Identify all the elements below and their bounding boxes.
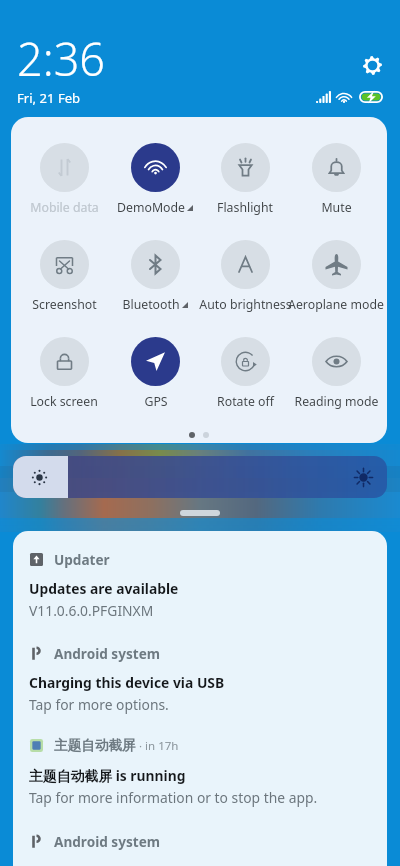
- staticText: Lock screen: [30, 393, 98, 410]
- staticText: Bluetooth: [122, 296, 180, 313]
- staticText: Flashlight: [217, 199, 273, 216]
- staticText: Charging this device via USB: [29, 673, 225, 692]
- button[interactable]: Android system: [13, 813, 387, 866]
- staticText: 主题自动截屏 is running: [29, 766, 186, 785]
- button[interactable]: Updater: [13, 531, 387, 624]
- button[interactable]: Bluetooth: [95, 240, 215, 318]
- button[interactable]: Mute: [276, 143, 387, 221]
- staticText: Tap for more options.: [29, 695, 169, 714]
- staticText: Updates are available: [29, 579, 179, 598]
- staticText: Tap for more information or to stop the …: [29, 788, 318, 807]
- button[interactable]: Screenshot: [11, 240, 124, 318]
- button[interactable]: Rotate off: [185, 337, 305, 415]
- staticText: · in 17h: [136, 738, 179, 754]
- staticText: Screenshot: [32, 296, 97, 313]
- staticText: Reading mode: [294, 393, 379, 410]
- button[interactable]: Mobile data: [11, 143, 124, 221]
- button[interactable]: Settings: [354, 47, 390, 83]
- staticText: Auto brightness: [199, 296, 292, 313]
- staticText: GPS: [144, 393, 168, 410]
- button[interactable]: Auto brightness: [185, 240, 305, 318]
- staticText: Aeroplane mode: [288, 296, 384, 313]
- button[interactable]: Flashlight: [185, 143, 305, 221]
- button[interactable]: Brightness: [13, 456, 387, 498]
- staticText: Android system: [54, 644, 161, 663]
- staticText: DemoMode: [117, 199, 185, 216]
- staticText: Fri, 21 Feb: [17, 89, 81, 107]
- button[interactable]: Android system: [13, 625, 387, 718]
- staticText: 2:36: [17, 28, 106, 89]
- staticText: Mute: [321, 199, 352, 216]
- staticText: Updater: [54, 550, 110, 569]
- button[interactable]: Aeroplane mode: [276, 240, 387, 318]
- button[interactable]: Lock screen: [11, 337, 124, 415]
- staticText: 主题自动截屏: [54, 737, 136, 754]
- button[interactable]: DemoMode: [95, 143, 215, 221]
- staticText: Mobile data: [30, 199, 99, 216]
- staticText: Android system: [54, 832, 161, 851]
- staticText: Rotate off: [217, 393, 274, 410]
- button[interactable]: Reading mode: [276, 337, 387, 415]
- staticText: V11.0.6.0.PFGINXM: [29, 601, 154, 620]
- button[interactable]: 主题自动截屏: [13, 718, 387, 811]
- button[interactable]: GPS: [95, 337, 215, 415]
